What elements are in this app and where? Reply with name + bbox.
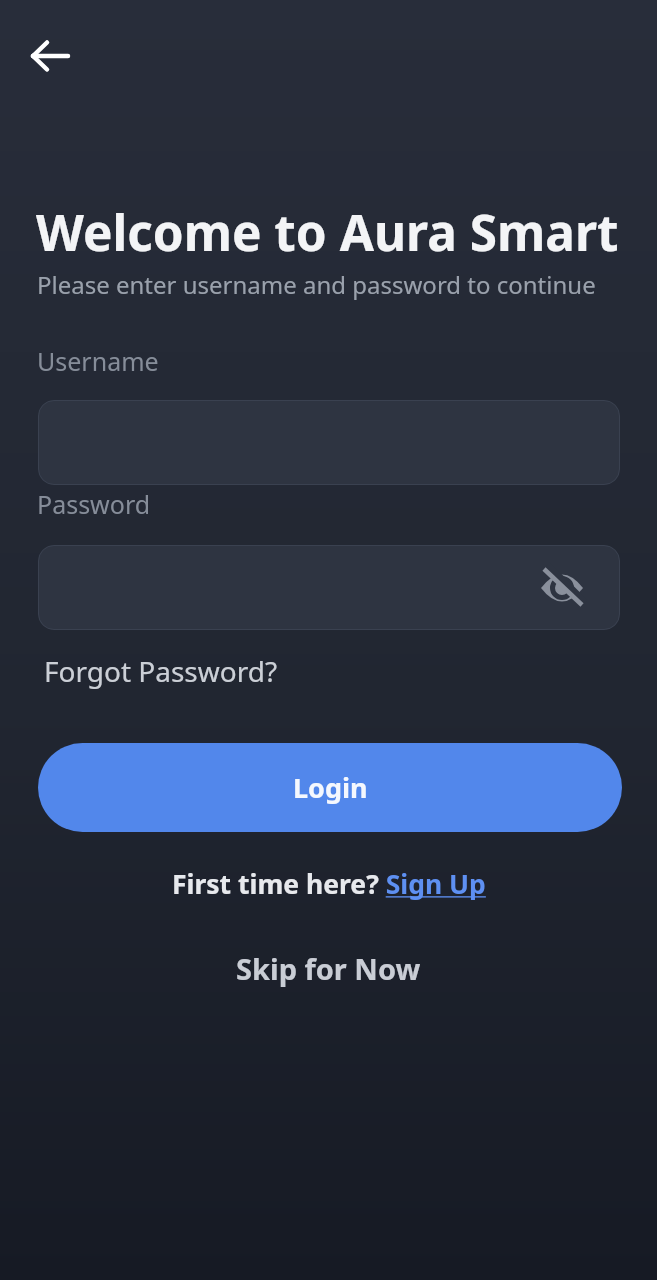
staticText: Password: [37, 487, 151, 521]
button[interactable]: Login: [38, 743, 622, 832]
button[interactable]: First time here? Sign Up: [172, 866, 486, 902]
staticText: Login: [293, 769, 368, 806]
button[interactable]: [538, 564, 586, 612]
button[interactable]: [38, 545, 620, 630]
button[interactable]: Forgot Password?: [44, 652, 278, 690]
staticText: Welcome to Aura Smart: [36, 198, 619, 265]
button[interactable]: [22, 28, 78, 84]
staticText: Please enter username and password to co…: [37, 268, 596, 301]
button[interactable]: Skip for Now: [236, 949, 421, 988]
staticText: Username: [37, 344, 159, 378]
